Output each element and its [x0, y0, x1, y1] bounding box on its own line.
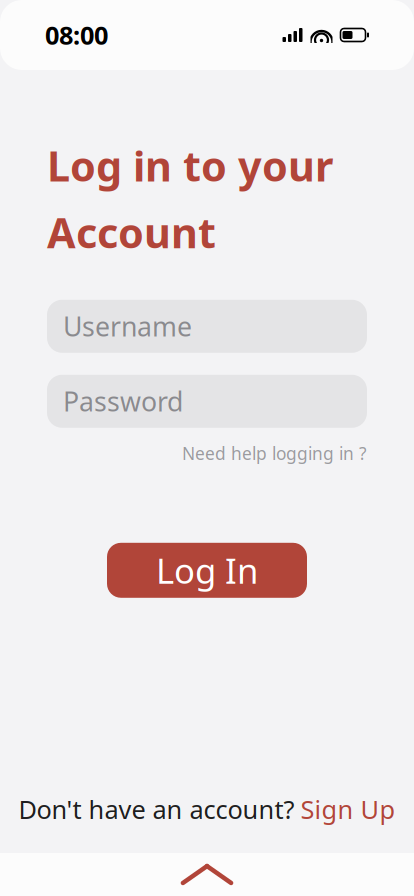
button[interactable]: Expand — [0, 853, 414, 896]
button[interactable]: Log In — [107, 543, 307, 598]
staticText: Don't have an account? — [18, 792, 294, 826]
button[interactable]: Need help logging in ? — [47, 442, 367, 465]
button[interactable]: Sign Up — [300, 792, 395, 826]
staticText: Sign Up — [300, 792, 395, 826]
staticText: 08:00 — [45, 18, 108, 52]
staticText: Username — [63, 309, 192, 344]
staticText: Password — [63, 384, 183, 419]
staticText: Log In — [156, 547, 258, 593]
staticText: Need help logging in ? — [182, 442, 367, 465]
staticText: Log in to your Account — [47, 138, 333, 260]
